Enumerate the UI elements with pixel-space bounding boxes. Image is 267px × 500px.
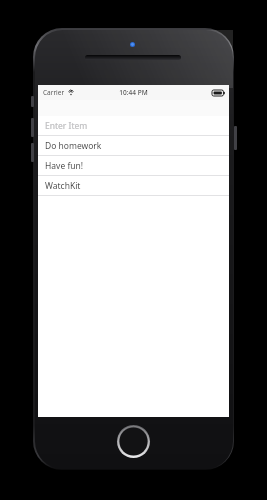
staticText: 10:44 PM [119,88,148,97]
button[interactable]: Enter Item [38,116,229,135]
staticText: Have fun! [45,160,84,172]
staticText: Carrier [43,88,65,97]
button[interactable]: WatchKit [38,176,229,195]
staticText: Enter Item [45,120,88,132]
button[interactable]: Do homework [38,136,229,155]
button[interactable]: Have fun! [38,156,229,175]
staticText: Do homework [45,140,102,152]
staticText: WatchKit [45,180,81,192]
